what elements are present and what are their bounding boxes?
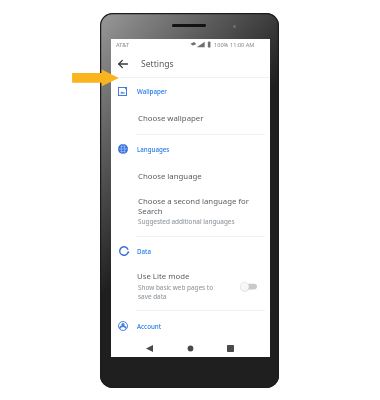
- staticText: Choose wallpaper: [138, 113, 204, 124]
- staticText: Suggested additional languages: [138, 217, 235, 226]
- button[interactable]: [111, 190, 270, 232]
- staticText: Account: [137, 322, 162, 330]
- staticText: Use Lite mode: [137, 271, 190, 282]
- button[interactable]: [111, 134, 270, 162]
- button[interactable]: [111, 104, 270, 134]
- button[interactable]: [111, 311, 270, 338]
- button[interactable]: [111, 162, 270, 190]
- staticText: Data: [137, 247, 151, 255]
- staticText: AT&T: [116, 41, 130, 49]
- staticText: Choose a second language for Search: [138, 196, 250, 216]
- button[interactable]: Back: [139, 338, 159, 358]
- button[interactable]: Back: [115, 55, 133, 73]
- staticText: Show basic web pages to save data: [138, 283, 213, 301]
- staticText: 11:00 AM: [230, 41, 255, 49]
- button[interactable]: Recents: [220, 338, 240, 358]
- staticText: 100%: [214, 41, 229, 49]
- button[interactable]: [111, 262, 270, 311]
- button[interactable]: [111, 232, 270, 262]
- staticText: Choose language: [138, 171, 202, 182]
- staticText: Wallpaper: [137, 87, 167, 95]
- button[interactable]: [111, 75, 270, 104]
- staticText: Languages: [137, 145, 170, 153]
- button[interactable]: Use Lite mode toggle: [240, 281, 257, 292]
- button[interactable]: Home: [180, 338, 200, 358]
- staticText: Settings: [141, 58, 174, 70]
